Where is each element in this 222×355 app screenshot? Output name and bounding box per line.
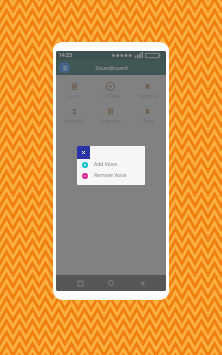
button[interactable]: Menu [59,62,70,73]
staticText: Users [68,93,80,99]
button[interactable]: Channels [58,107,90,124]
button[interactable]: Recents [73,276,87,290]
button[interactable]: Home [104,276,118,290]
staticText: Programs [100,118,121,124]
button[interactable]: Close [77,146,90,159]
button[interactable]: Users [58,82,90,99]
staticText: Soundboard [95,64,128,71]
staticText: Schedule [138,93,158,99]
staticText: Call Now [101,93,120,99]
button[interactable]: Remove Voice [77,170,145,181]
staticText: Channels [64,118,84,124]
staticText: Voice [142,118,154,124]
button[interactable]: Voice [131,107,164,124]
staticText: Add Voice [94,161,118,168]
button[interactable]: Back [135,276,149,290]
staticText: 14:23 [59,52,72,59]
button[interactable]: Schedule [131,82,164,99]
button[interactable]: Call Now [94,82,127,99]
staticText: Remove Voice [94,172,127,179]
button[interactable]: Add Voice [77,159,145,170]
button[interactable]: Programs [94,107,127,124]
